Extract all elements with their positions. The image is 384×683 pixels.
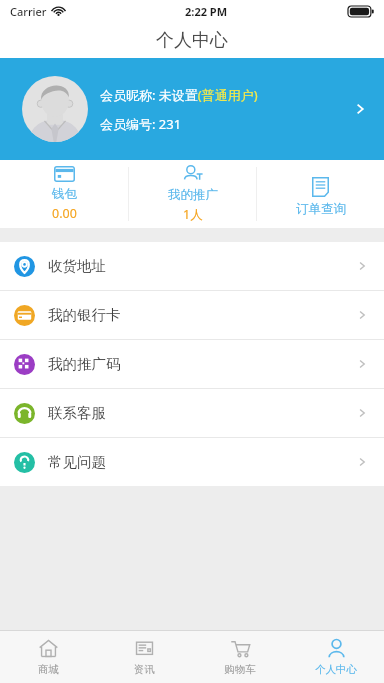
button[interactable]: 我的推广码 — [0, 340, 384, 388]
button[interactable]: 常见问题 — [0, 438, 384, 486]
staticText: 订单查询 — [296, 201, 346, 217]
staticText: 购物车 — [224, 663, 256, 676]
staticText: 会员编号: 231 — [100, 115, 182, 133]
staticText: Carrier — [10, 4, 47, 19]
button[interactable]: 收货地址 — [0, 242, 384, 290]
staticText: 我的推广 — [168, 187, 218, 203]
button[interactable]: 资讯 — [96, 631, 192, 683]
staticText: 收货地址 — [48, 257, 106, 275]
button[interactable]: 订单查询 — [257, 160, 384, 228]
staticText: 2:22 PM — [185, 4, 228, 19]
staticText: 我的推广码 — [48, 355, 121, 373]
staticText: 会员昵称: 未设置(普通用户) — [100, 86, 258, 104]
button[interactable]: 购物车 — [192, 631, 288, 683]
staticText: 1人 — [183, 206, 203, 223]
button[interactable]: 我的推广 — [129, 160, 256, 228]
button[interactable]: 钱包 — [0, 160, 128, 228]
staticText: 0.00 — [52, 205, 77, 222]
staticText: 钱包 — [52, 186, 77, 202]
button[interactable]: 商城 — [0, 631, 96, 683]
staticText: 商城 — [38, 663, 59, 676]
button[interactable]: 会员昵称: 未设置(普通用户) — [0, 58, 384, 160]
button[interactable]: 个人中心 — [288, 631, 384, 683]
button[interactable]: 我的银行卡 — [0, 291, 384, 339]
staticText: 个人中心 — [315, 663, 357, 676]
staticText: 个人中心 — [156, 29, 228, 52]
staticText: 联系客服 — [48, 404, 106, 422]
staticText: 资讯 — [134, 663, 155, 676]
other: 查看个人资料 — [350, 99, 370, 119]
staticText: 我的银行卡 — [48, 306, 121, 324]
button[interactable]: 联系客服 — [0, 389, 384, 437]
staticText: 常见问题 — [48, 453, 106, 471]
